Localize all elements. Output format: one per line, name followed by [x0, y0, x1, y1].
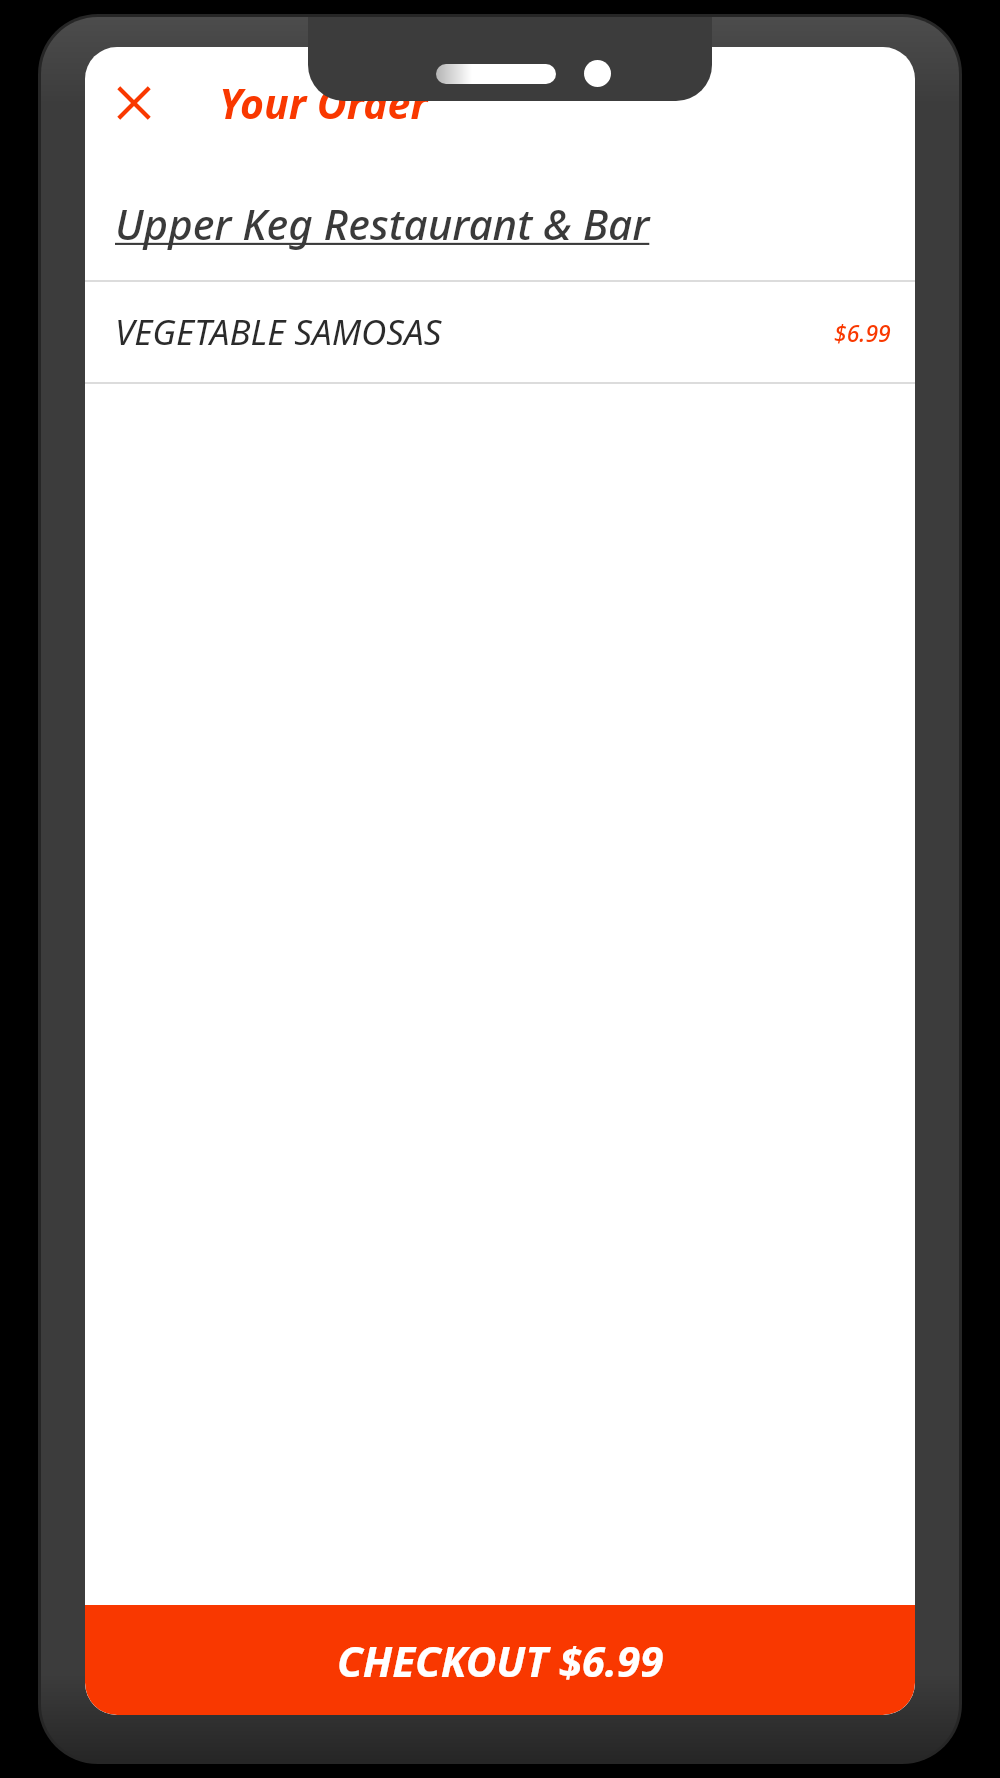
- staticText: CHECKOUT $6.99: [337, 1632, 664, 1689]
- button[interactable]: Upper Keg Restaurant & Bar: [85, 159, 915, 280]
- staticText: Your Order: [219, 75, 428, 131]
- button[interactable]: VEGETABLE SAMOSAS: [85, 282, 915, 382]
- staticText: Upper Keg Restaurant & Bar: [115, 195, 650, 252]
- button[interactable]: Close: [97, 66, 171, 140]
- staticText: $6.99: [834, 317, 891, 348]
- button[interactable]: CHECKOUT $6.99: [85, 1605, 915, 1715]
- staticText: VEGETABLE SAMOSAS: [115, 308, 442, 356]
